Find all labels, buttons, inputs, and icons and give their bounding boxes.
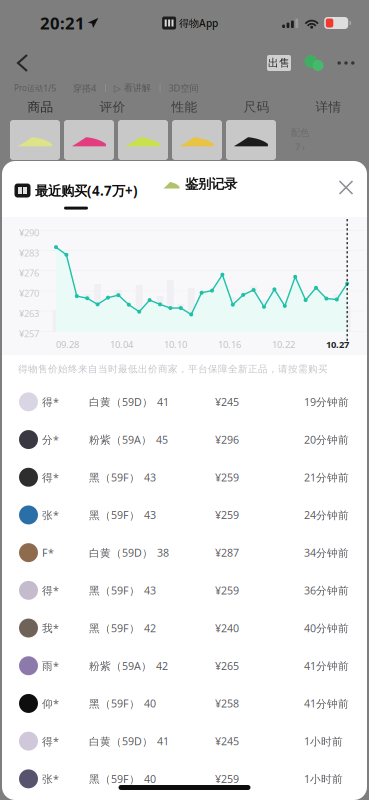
staticText: 商品	[27, 99, 53, 115]
staticText: 配色	[291, 127, 309, 139]
staticText: ¥283	[19, 246, 39, 259]
staticText: 仰*	[42, 696, 59, 711]
staticText: 40分钟前	[304, 621, 349, 635]
staticText: 得*	[42, 470, 59, 484]
staticText: F*	[42, 545, 54, 560]
staticText: 7 ›	[295, 140, 305, 153]
staticText: 黑（59F）	[89, 621, 140, 635]
staticText: ¥270	[19, 287, 39, 299]
button[interactable]: 详情	[292, 96, 364, 118]
staticText: 43	[144, 470, 156, 484]
staticText: 43	[144, 583, 156, 598]
staticText: 3D空间	[168, 82, 198, 94]
button[interactable]: 更多	[325, 53, 357, 73]
staticText: 19分钟前	[304, 395, 349, 409]
staticText: 鉴别记录	[185, 176, 237, 192]
staticText: 41分钟前	[304, 658, 349, 673]
staticText: 分*	[42, 432, 59, 447]
staticText: 我*	[42, 621, 59, 635]
staticText: 粉紫（59A）	[89, 658, 152, 673]
staticText: 黑（59F）	[89, 696, 140, 711]
staticText: 白黄（59D）	[89, 545, 153, 560]
button[interactable]: 最近购买(4.7万+)	[8, 168, 138, 210]
staticText: 张*	[42, 508, 59, 522]
button[interactable]: 性能	[148, 96, 220, 118]
staticText: 34分钟前	[304, 545, 349, 560]
staticText: 1小时前	[304, 734, 343, 748]
button[interactable]: 返回	[12, 51, 36, 75]
staticText: 得物售价始终来自当时最低出价商家，平台保障全新正品，请按需购买	[18, 363, 328, 375]
staticText: 得物App	[179, 16, 218, 30]
staticText: 40	[144, 696, 156, 711]
staticText: 10.10	[164, 338, 187, 351]
staticText: ¥259	[215, 583, 239, 598]
button[interactable]: F*	[2, 534, 367, 571]
staticText: 尺码	[243, 99, 269, 115]
staticText: 42	[156, 658, 168, 673]
staticText: 21分钟前	[304, 470, 349, 484]
staticText: ¥259	[215, 470, 239, 484]
button[interactable]: 鉴别记录	[138, 176, 237, 202]
staticText: 41	[157, 734, 169, 748]
staticText: 白黄（59D）	[89, 395, 153, 409]
staticText: 20:21	[40, 12, 85, 34]
staticText: 1/5	[43, 82, 56, 94]
button[interactable]: 张*	[2, 760, 367, 798]
staticText: 41分钟前	[304, 696, 349, 711]
staticText: 得*	[42, 734, 59, 748]
staticText: 24分钟前	[304, 508, 349, 522]
staticText: ▷ 看讲解	[114, 82, 151, 94]
staticText: 性能	[171, 99, 197, 115]
staticText: 10.27	[326, 338, 349, 351]
staticText: 得*	[42, 395, 59, 409]
button[interactable]: 得*	[2, 722, 367, 760]
staticText: 黑（59F）	[89, 772, 140, 786]
staticText: 粉紫（59A）	[89, 432, 152, 447]
staticText: 36分钟前	[304, 583, 349, 598]
button[interactable]: 关闭	[334, 175, 358, 202]
staticText: 38	[157, 545, 169, 560]
staticText: 10.16	[218, 338, 241, 351]
staticText: ¥259	[215, 772, 239, 786]
staticText: 09.28	[56, 338, 79, 351]
staticText: 最近购买(4.7万+)	[35, 181, 138, 200]
staticText: ¥257	[19, 327, 39, 340]
button[interactable]: 分*	[2, 421, 367, 458]
button[interactable]: 得*	[2, 383, 367, 421]
staticText: 40	[144, 772, 156, 786]
staticText: ¥276	[19, 267, 39, 279]
staticText: 黑（59F）	[89, 583, 140, 598]
staticText: ¥296	[215, 432, 239, 447]
staticText: 42	[144, 621, 156, 635]
staticText: 详情	[315, 99, 341, 115]
button[interactable]: 得*	[2, 458, 367, 496]
staticText: ¥265	[215, 658, 239, 673]
button[interactable]: 雨*	[2, 647, 367, 685]
staticText: 白黄（59D）	[89, 734, 153, 748]
staticText: 出售	[268, 56, 290, 70]
staticText: 黑（59F）	[89, 508, 140, 522]
staticText: ¥258	[215, 696, 239, 711]
button[interactable]: 得*	[2, 571, 367, 609]
button[interactable]: 尺码	[220, 96, 292, 118]
button[interactable]: 分享	[293, 53, 325, 73]
button[interactable]: 出售	[265, 53, 293, 73]
staticText: 10.22	[272, 338, 295, 351]
staticText: ¥290	[19, 226, 39, 239]
staticText: 10.04	[110, 338, 133, 351]
staticText: 黑（59F）	[89, 470, 140, 484]
staticText: 45	[156, 432, 168, 447]
staticText: 穿搭4	[73, 82, 96, 94]
staticText: ¥263	[19, 307, 39, 320]
staticText: ¥240	[215, 621, 239, 635]
button[interactable]: 张*	[2, 496, 367, 534]
button[interactable]: 仰*	[2, 685, 367, 722]
staticText: 1小时前	[304, 772, 343, 786]
staticText: 41	[157, 395, 169, 409]
staticText: ¥245	[215, 734, 239, 748]
staticText: 张*	[42, 772, 59, 786]
button[interactable]: 评价	[76, 96, 148, 118]
button[interactable]: 我*	[2, 609, 367, 647]
button[interactable]: 商品	[4, 96, 76, 118]
staticText: ¥259	[215, 508, 239, 522]
